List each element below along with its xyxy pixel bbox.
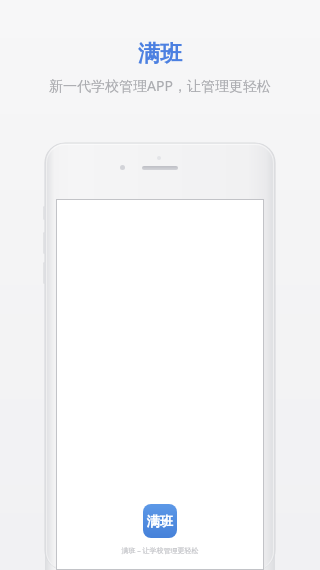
button[interactable]: 满班 — 让学校管理更轻松 [121, 504, 199, 556]
staticText: 新一代学校管理APP，让管理更轻松 [49, 76, 271, 95]
staticText: 满班 – 让学校管理更轻松 [121, 546, 199, 556]
staticText: 满班 [147, 513, 173, 529]
staticText: 满班 [138, 40, 182, 68]
